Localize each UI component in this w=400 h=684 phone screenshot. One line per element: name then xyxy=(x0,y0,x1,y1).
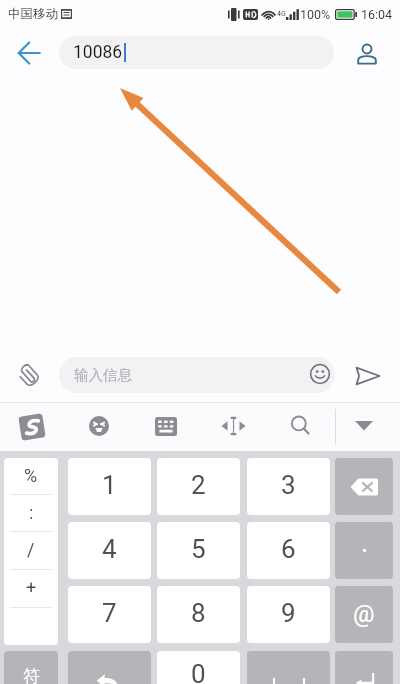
button[interactable]: Space xyxy=(247,651,330,684)
staticText: 16:04 xyxy=(361,7,393,22)
staticText: : xyxy=(29,502,34,523)
button[interactable]: Back xyxy=(6,30,52,76)
staticText: 9 xyxy=(281,598,296,628)
button[interactable]: Enter xyxy=(335,651,393,684)
staticText: 2 xyxy=(191,470,206,500)
button[interactable]: Return xyxy=(68,651,151,684)
staticText: 输入信息 xyxy=(74,366,132,384)
button[interactable]: + xyxy=(4,570,58,607)
button[interactable]: 0 xyxy=(157,651,240,684)
button[interactable]: Contacts xyxy=(344,31,389,76)
button[interactable]: : xyxy=(4,495,58,531)
button[interactable]: 5 xyxy=(157,522,240,579)
button[interactable]: 输入信息 xyxy=(59,357,335,393)
staticText: 0 xyxy=(191,659,206,684)
button[interactable]: Search xyxy=(278,403,322,447)
button[interactable]: 7 xyxy=(68,586,151,643)
staticText: 3 xyxy=(281,470,296,500)
staticText: 5 xyxy=(191,534,206,564)
staticText: @ xyxy=(353,600,375,628)
staticText: % xyxy=(24,465,38,486)
staticText: 7 xyxy=(102,598,117,628)
button[interactable]: 4 xyxy=(68,522,151,579)
button[interactable]: 6 xyxy=(247,522,330,579)
staticText: 中国移动 xyxy=(8,6,58,22)
button[interactable]: Hide keyboard xyxy=(342,403,386,447)
button[interactable]: % xyxy=(4,458,58,494)
button[interactable]: 3 xyxy=(247,458,330,515)
staticText: 1 xyxy=(102,470,117,500)
staticText: 8 xyxy=(191,598,206,628)
staticText: 6 xyxy=(281,534,296,564)
staticText: 4G xyxy=(277,10,286,18)
button[interactable]: 9 xyxy=(247,586,330,643)
staticText: 10086 xyxy=(73,42,123,63)
button[interactable]: Sogou input xyxy=(10,405,54,449)
button[interactable]: 1 xyxy=(68,458,151,515)
button[interactable]: Emoji xyxy=(77,404,121,448)
button[interactable]: Emoji picker xyxy=(308,362,332,386)
button[interactable]: Send xyxy=(345,353,390,398)
staticText: / xyxy=(27,539,35,560)
staticText: 100% xyxy=(300,7,331,22)
button[interactable]: Move cursor xyxy=(211,404,255,448)
button[interactable]: Keyboard layout xyxy=(144,404,188,448)
button[interactable]: 符 xyxy=(4,651,58,684)
button[interactable]: Period xyxy=(335,522,393,579)
button[interactable]: 10086 xyxy=(59,36,334,69)
button[interactable]: Attach file xyxy=(6,353,51,398)
button[interactable]: At sign xyxy=(335,586,393,643)
button[interactable]: Delete xyxy=(335,458,393,515)
staticText: 符 xyxy=(23,666,40,684)
button[interactable]: 2 xyxy=(157,458,240,515)
button[interactable]: 8 xyxy=(157,586,240,643)
button[interactable]: / xyxy=(4,532,58,569)
staticText: 4 xyxy=(102,534,117,564)
staticText: + xyxy=(26,577,37,598)
